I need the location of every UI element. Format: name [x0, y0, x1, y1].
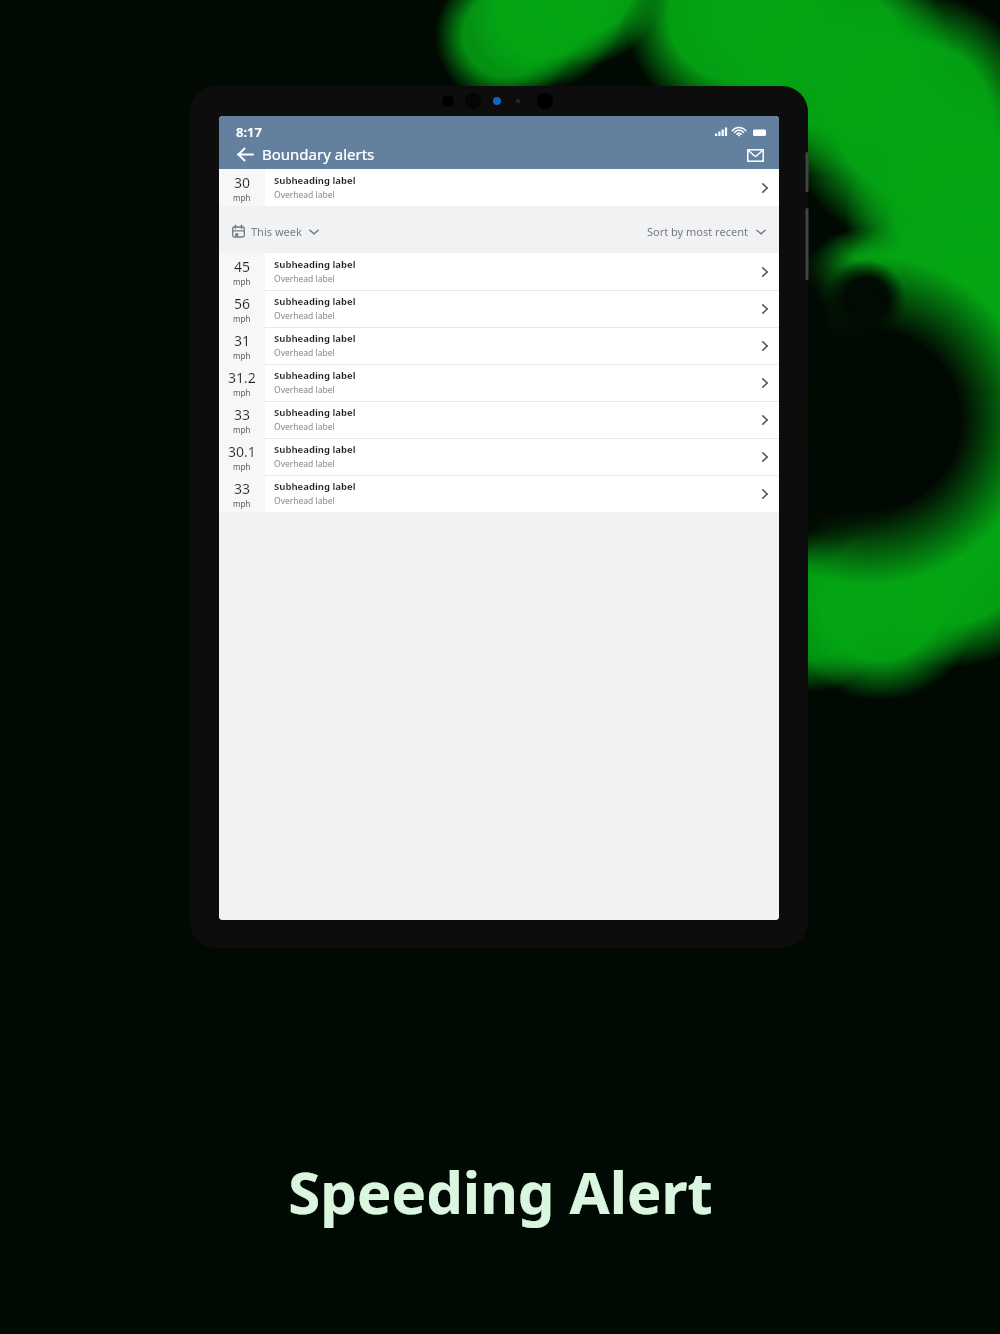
staticText: Subheading label [274, 480, 356, 493]
staticText: Overhead label [274, 273, 335, 285]
button[interactable]: 30.1 [219, 438, 779, 475]
staticText: 30.1 [228, 442, 256, 461]
staticText: Overhead label [274, 458, 335, 470]
staticText: Speeding Alert [288, 1152, 713, 1231]
staticText: mph [233, 192, 251, 203]
staticText: mph [233, 424, 251, 435]
staticText: 30 [234, 173, 251, 192]
staticText: 31.2 [228, 368, 256, 387]
staticText: Subheading label [274, 258, 356, 271]
staticText: This week [251, 224, 302, 239]
staticText: mph [233, 313, 251, 324]
button[interactable]: This week [232, 224, 319, 239]
button[interactable]: Back [233, 142, 375, 166]
staticText: mph [233, 350, 251, 361]
staticText: Overhead label [274, 347, 335, 359]
staticText: Boundary alerts [262, 144, 375, 164]
staticText: Overhead label [274, 189, 335, 201]
staticText: Overhead label [274, 384, 335, 396]
staticText: mph [233, 387, 251, 398]
staticText: Sort by most recent [647, 224, 748, 239]
button[interactable]: 30 [219, 169, 779, 206]
button[interactable]: 45 [219, 253, 779, 290]
button[interactable]: 31 [219, 327, 779, 364]
staticText: Overhead label [274, 310, 335, 322]
staticText: 33 [234, 405, 251, 424]
button[interactable]: 33 [219, 401, 779, 438]
staticText: Subheading label [274, 332, 356, 345]
staticText: 56 [234, 294, 251, 313]
button[interactable]: 31.2 [219, 364, 779, 401]
staticText: Overhead label [274, 421, 335, 433]
staticText: 33 [234, 479, 251, 498]
staticText: Subheading label [274, 443, 356, 456]
staticText: mph [233, 498, 251, 509]
button[interactable]: Back [233, 142, 257, 166]
staticText: Subheading label [274, 295, 356, 308]
staticText: 31 [234, 331, 251, 350]
staticText: 45 [234, 257, 251, 276]
button[interactable]: Messages [742, 142, 768, 168]
staticText: mph [233, 276, 251, 287]
button[interactable]: Sort by most recent [647, 224, 766, 239]
staticText: Subheading label [274, 369, 356, 382]
button[interactable]: 56 [219, 290, 779, 327]
staticText: Subheading label [274, 406, 356, 419]
staticText: 8:17 [236, 123, 262, 141]
staticText: mph [233, 461, 251, 472]
staticText: Subheading label [274, 174, 356, 187]
staticText: Overhead label [274, 495, 335, 507]
button[interactable]: 33 [219, 475, 779, 512]
